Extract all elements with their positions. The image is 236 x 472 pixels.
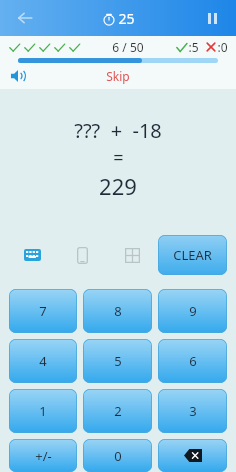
staticText: ??? + -18 — [74, 117, 162, 144]
staticText: 1 — [39, 402, 47, 420]
button[interactable]: Phone keypad input — [68, 241, 96, 269]
button[interactable]: Sound — [6, 64, 30, 88]
button[interactable]: +/- — [9, 439, 77, 472]
button[interactable]: 8 — [83, 289, 152, 333]
staticText: 6 / 50 — [112, 39, 144, 55]
staticText: 3 — [189, 402, 197, 420]
button[interactable]: CLEAR — [158, 235, 227, 275]
button[interactable]: 25 — [102, 9, 135, 28]
staticText: +/- — [35, 447, 52, 465]
button[interactable]: Back — [10, 3, 40, 33]
button[interactable]: Grid input — [118, 241, 146, 269]
button[interactable]: 3 — [158, 389, 227, 433]
staticText: :5 — [188, 39, 199, 55]
staticText: 0 — [114, 447, 122, 465]
staticText: CLEAR — [173, 246, 212, 264]
button[interactable]: Backspace — [158, 439, 227, 472]
button[interactable]: Keyboard input — [18, 241, 46, 269]
staticText: 7 — [39, 302, 47, 320]
staticText: 4 — [39, 352, 47, 370]
staticText: 229 — [99, 171, 137, 201]
button[interactable]: 4 — [9, 339, 77, 383]
staticText: :0 — [217, 39, 228, 55]
staticText: 9 — [189, 302, 197, 320]
button[interactable]: 9 — [158, 289, 227, 333]
button[interactable]: Skip — [106, 68, 130, 84]
button[interactable]: 2 — [83, 389, 152, 433]
button[interactable]: 0 — [83, 439, 152, 472]
staticText: Skip — [106, 68, 130, 84]
button[interactable]: 6 — [158, 339, 227, 383]
button[interactable]: 7 — [9, 289, 77, 333]
staticText: 6 — [189, 352, 197, 370]
button[interactable]: Pause — [198, 4, 226, 32]
staticText: 25 — [118, 9, 135, 28]
staticText: 2 — [114, 402, 122, 420]
button[interactable]: 1 — [9, 389, 77, 433]
button[interactable]: 5 — [83, 339, 152, 383]
staticText: = — [113, 145, 124, 170]
staticText: 8 — [114, 302, 122, 320]
staticText: 5 — [114, 352, 122, 370]
